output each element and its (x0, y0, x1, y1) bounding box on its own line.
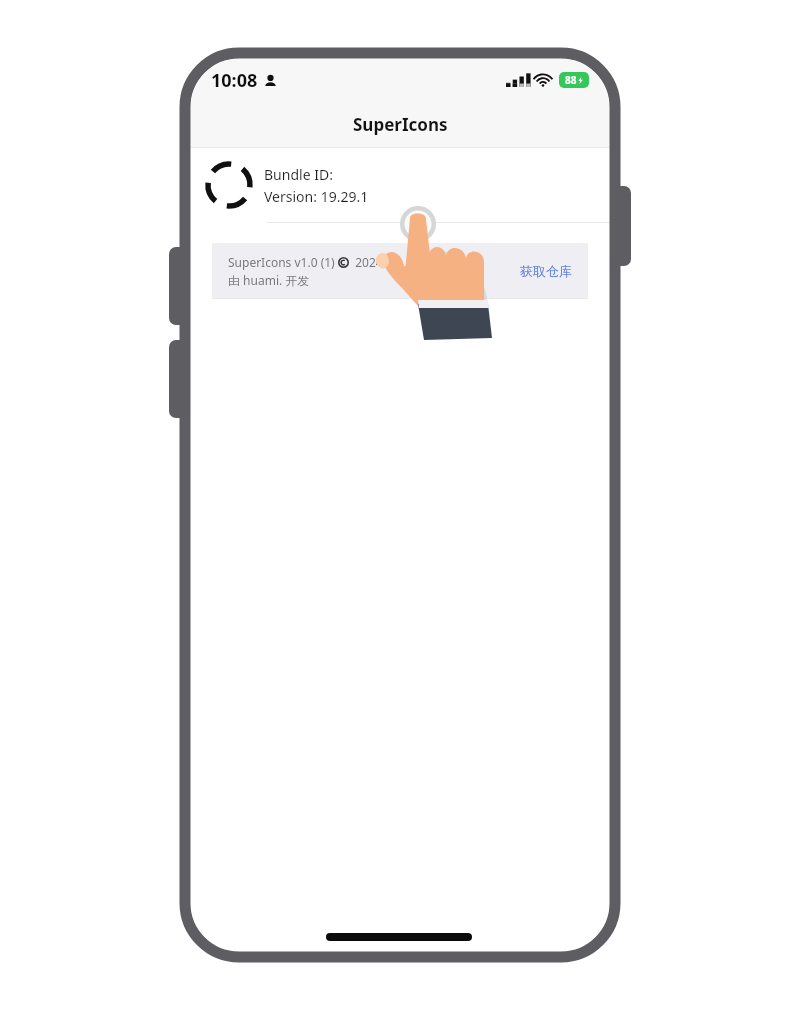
staticText: 2024 (349, 254, 383, 270)
button[interactable]: 获取仓库 (520, 263, 572, 279)
staticText: 10:08 (211, 68, 258, 93)
staticText: 88 (565, 73, 577, 87)
staticText: Version: 19.29.1 (264, 187, 369, 206)
other: Tap pointer (0, 0, 800, 1010)
staticText: 由 huami. 开发 (228, 272, 310, 288)
staticText: Bundle ID: (264, 165, 333, 184)
staticText: SuperIcons (353, 113, 448, 136)
staticText: SuperIcons v1.0 (1) (228, 254, 338, 270)
button[interactable]: Bundle ID: (191, 148, 609, 222)
button[interactable]: SuperIcons v1.0 (1) (212, 243, 588, 298)
